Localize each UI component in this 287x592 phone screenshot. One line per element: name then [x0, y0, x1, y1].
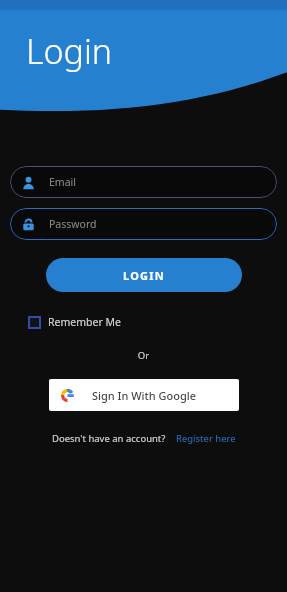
- button[interactable]: Email: [10, 166, 277, 198]
- button[interactable]: Password: [10, 208, 277, 240]
- button[interactable]: LOGIN: [46, 258, 242, 292]
- button[interactable]: Remember Me: [26, 313, 123, 331]
- other: Password: [22, 218, 35, 231]
- staticText: Password: [49, 217, 97, 231]
- button[interactable]: Register here: [176, 432, 236, 445]
- staticText: Remember Me: [48, 315, 121, 329]
- staticText: Sign In With Google: [92, 388, 197, 403]
- other: Email: [22, 176, 35, 189]
- staticText: Login: [26, 28, 113, 74]
- staticText: Register here: [176, 432, 236, 445]
- staticText: Doesn't have an account?: [52, 432, 166, 445]
- staticText: Email: [49, 175, 76, 189]
- button[interactable]: Sign In With Google: [49, 379, 239, 411]
- staticText: LOGIN: [123, 268, 165, 283]
- staticText: Or: [0, 349, 287, 362]
